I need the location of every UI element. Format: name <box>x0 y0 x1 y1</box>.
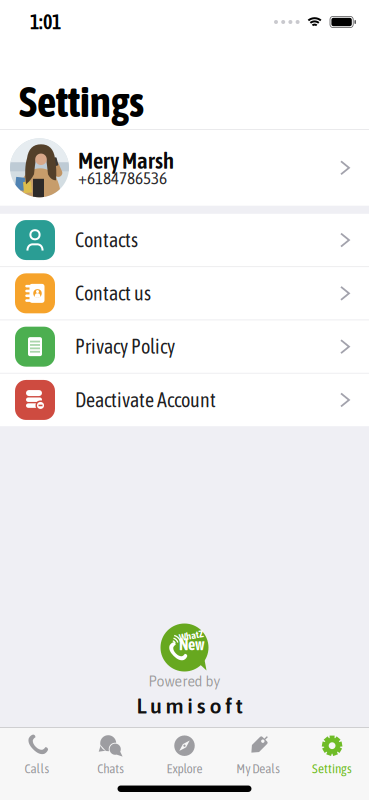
staticText: WhatZ <box>179 630 204 641</box>
button[interactable]: Calls <box>0 734 74 776</box>
button[interactable]: Contacts <box>0 214 369 266</box>
button[interactable]: Privacy Policy <box>0 320 369 373</box>
staticText: Settings <box>19 77 144 126</box>
staticText: My Deals <box>236 761 280 776</box>
button[interactable]: Chats <box>74 734 148 776</box>
staticText: Powered by <box>148 673 220 689</box>
button[interactable]: Contact us <box>0 267 369 320</box>
button[interactable]: Mery Marsh <box>0 130 369 206</box>
staticText: +6184786536 <box>78 168 167 188</box>
staticText: Explore <box>166 761 202 776</box>
staticText: Calls <box>24 761 49 776</box>
button[interactable]: Settings <box>295 734 369 776</box>
button[interactable]: Explore <box>148 734 221 776</box>
staticText: Mery Marsh <box>78 148 174 174</box>
staticText: Contacts <box>75 229 138 251</box>
staticText: New <box>179 635 205 654</box>
staticText: 1:01 <box>30 10 61 33</box>
button[interactable]: My Deals <box>221 734 295 776</box>
button[interactable]: Deactivate Account <box>0 374 369 426</box>
staticText: Privacy Policy <box>75 335 175 358</box>
staticText: Contact us <box>75 282 151 305</box>
staticText: Chats <box>97 761 124 776</box>
staticText: Settings <box>312 761 352 776</box>
staticText: Lumisoft <box>136 694 243 718</box>
staticText: Deactivate Account <box>75 388 216 411</box>
